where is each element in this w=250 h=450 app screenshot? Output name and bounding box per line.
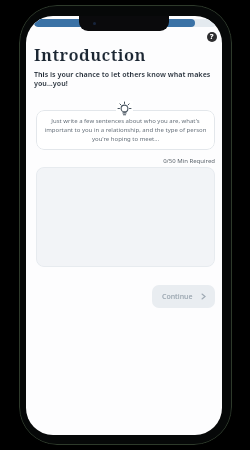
button[interactable]: Continue (152, 285, 215, 308)
staticText: Just write a few sentences about who you… (36, 117, 215, 143)
staticText: 0/50 Min Required (26, 157, 215, 165)
staticText: Continue (162, 292, 193, 302)
button[interactable]: ? (207, 32, 217, 42)
staticText: Introduction (34, 43, 146, 65)
staticText: ? (210, 32, 214, 42)
staticText: This is your chance to let others know w… (34, 70, 211, 88)
